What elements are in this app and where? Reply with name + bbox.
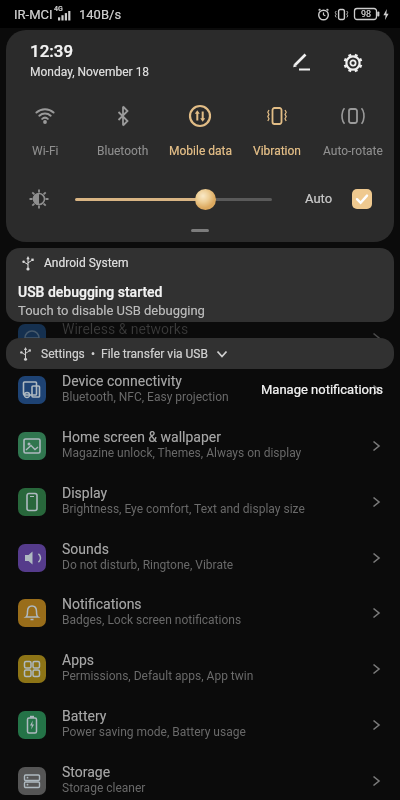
button[interactable]: Display <box>0 474 400 530</box>
staticText: Touch to disable USB debugging <box>18 303 205 318</box>
staticText: Vibration <box>253 144 301 158</box>
staticText: Apps <box>62 652 95 668</box>
staticText: File transfer via USB <box>101 347 208 361</box>
staticText: Device connectivity <box>62 373 182 389</box>
staticText: Manage notifications <box>261 382 383 397</box>
staticText: Brightness, Eye comfort, Text and displa… <box>62 502 305 516</box>
staticText: USB debugging started <box>18 284 163 300</box>
staticText: Wi-Fi <box>32 144 59 158</box>
button[interactable]: Storage <box>0 753 400 800</box>
staticText: Permissions, Default apps, App twin <box>62 669 254 683</box>
staticText: IR-MCI <box>14 7 53 22</box>
staticText: • <box>85 347 101 361</box>
button[interactable]: Wireless & networks <box>0 310 400 366</box>
staticText: Display <box>62 485 108 501</box>
button[interactable]: Manage notifications <box>203 379 383 400</box>
button[interactable] <box>342 52 364 74</box>
staticText: Home screen & wallpaper <box>62 429 221 445</box>
staticText: Auto <box>305 191 333 206</box>
staticText: Do not disturb, Ringtone, Vibrate <box>62 558 234 572</box>
staticText: Wireless & networks <box>62 321 189 337</box>
staticText: 140B/s <box>79 7 122 22</box>
button[interactable] <box>352 189 372 209</box>
button[interactable]: Auto-rotate <box>317 102 389 158</box>
button[interactable]: Mobile data <box>164 102 236 158</box>
staticText: Battery <box>62 708 107 724</box>
staticText: Android System <box>44 256 129 270</box>
button[interactable]: Notifications <box>0 585 400 641</box>
button[interactable]: Battery <box>0 697 400 753</box>
button[interactable]: Wi-Fi <box>9 102 81 158</box>
staticText: Power saving mode, Battery usage <box>62 725 246 739</box>
staticText: Bluetooth, NFC, Easy projection <box>62 390 229 404</box>
button[interactable]: Home screen & wallpaper <box>0 418 400 474</box>
staticText: Settings <box>41 347 85 361</box>
button[interactable]: Device connectivity <box>0 362 400 418</box>
staticText: 12:39 <box>30 41 74 61</box>
staticText: Badges, Lock screen notifications <box>62 613 242 627</box>
staticText: Bluetooth <box>97 144 149 158</box>
staticText: Storage cleaner <box>62 781 146 795</box>
staticText: Mobile data <box>169 144 232 158</box>
staticText: Sounds <box>62 541 109 557</box>
button[interactable]: Apps <box>0 641 400 697</box>
staticText: Auto-rotate <box>323 144 383 158</box>
button[interactable]: Vibration <box>241 102 313 158</box>
staticText: Storage <box>62 764 111 780</box>
button[interactable]: Sounds <box>0 530 400 586</box>
staticText: Monday, November 18 <box>30 65 150 79</box>
button[interactable]: Bluetooth <box>87 102 159 158</box>
staticText: Magazine unlock, Themes, Always on displ… <box>62 446 302 460</box>
button[interactable]: Android System <box>6 248 394 322</box>
staticText: Notifications <box>62 596 142 612</box>
staticText: 4G <box>54 5 63 13</box>
button[interactable] <box>290 50 314 74</box>
staticText: 98 <box>361 9 372 20</box>
button[interactable]: Settings <box>6 338 394 369</box>
